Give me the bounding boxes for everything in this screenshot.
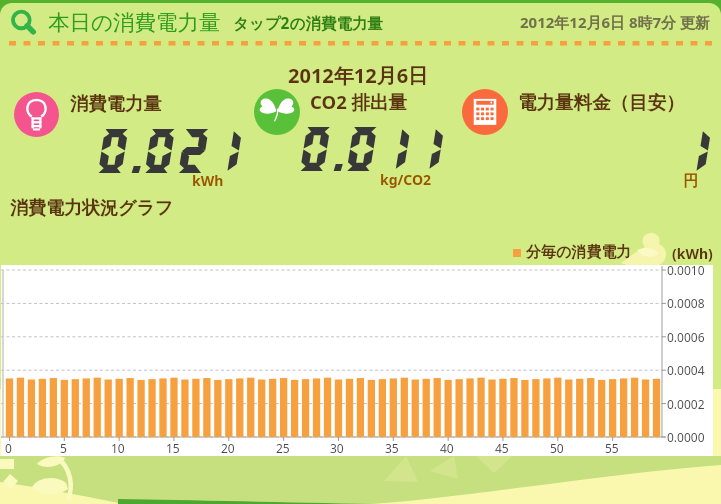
- staticText: 45: [495, 440, 509, 456]
- staticText: 30: [330, 440, 344, 456]
- staticText: 分毎の消費電力: [526, 243, 632, 262]
- staticText: 0.0000: [667, 429, 705, 445]
- staticText: 0.0006: [667, 329, 705, 345]
- staticText: タップ2の消費電力量: [233, 12, 383, 33]
- staticText: 2012年12月6日 8時7分 更新: [520, 12, 711, 32]
- staticText: 0.0002: [667, 396, 705, 412]
- staticText: 35: [385, 440, 399, 456]
- button[interactable]: Power: [14, 92, 59, 137]
- staticText: 10: [111, 440, 125, 456]
- button[interactable]: CO2: [254, 89, 300, 135]
- staticText: 0.0004: [667, 362, 705, 378]
- staticText: 円: [683, 172, 698, 191]
- staticText: 0.0010: [667, 262, 705, 278]
- staticText: CO2 排出量: [310, 89, 408, 114]
- button[interactable]: Price: [462, 89, 508, 135]
- staticText: 5: [60, 440, 67, 456]
- staticText: 20: [221, 440, 235, 456]
- staticText: kg/CO2: [380, 170, 432, 189]
- staticText: 50: [550, 440, 564, 456]
- staticText: 55: [605, 440, 619, 456]
- staticText: 2012年12月6日: [288, 62, 429, 89]
- staticText: 0: [5, 440, 12, 456]
- button[interactable]: Search: [6, 5, 40, 39]
- staticText: 消費電力状況グラフ: [10, 197, 174, 220]
- staticText: 15: [166, 440, 180, 456]
- staticText: 消費電力量: [70, 92, 162, 115]
- staticText: 40: [440, 440, 454, 456]
- staticText: 本日の消費電力量: [48, 9, 221, 36]
- staticText: 0.0008: [667, 295, 705, 311]
- staticText: 電力量料金（目安）: [518, 91, 685, 114]
- staticText: kWh: [192, 171, 224, 190]
- staticText: 25: [276, 440, 290, 456]
- staticText: (kWh): [672, 244, 713, 263]
